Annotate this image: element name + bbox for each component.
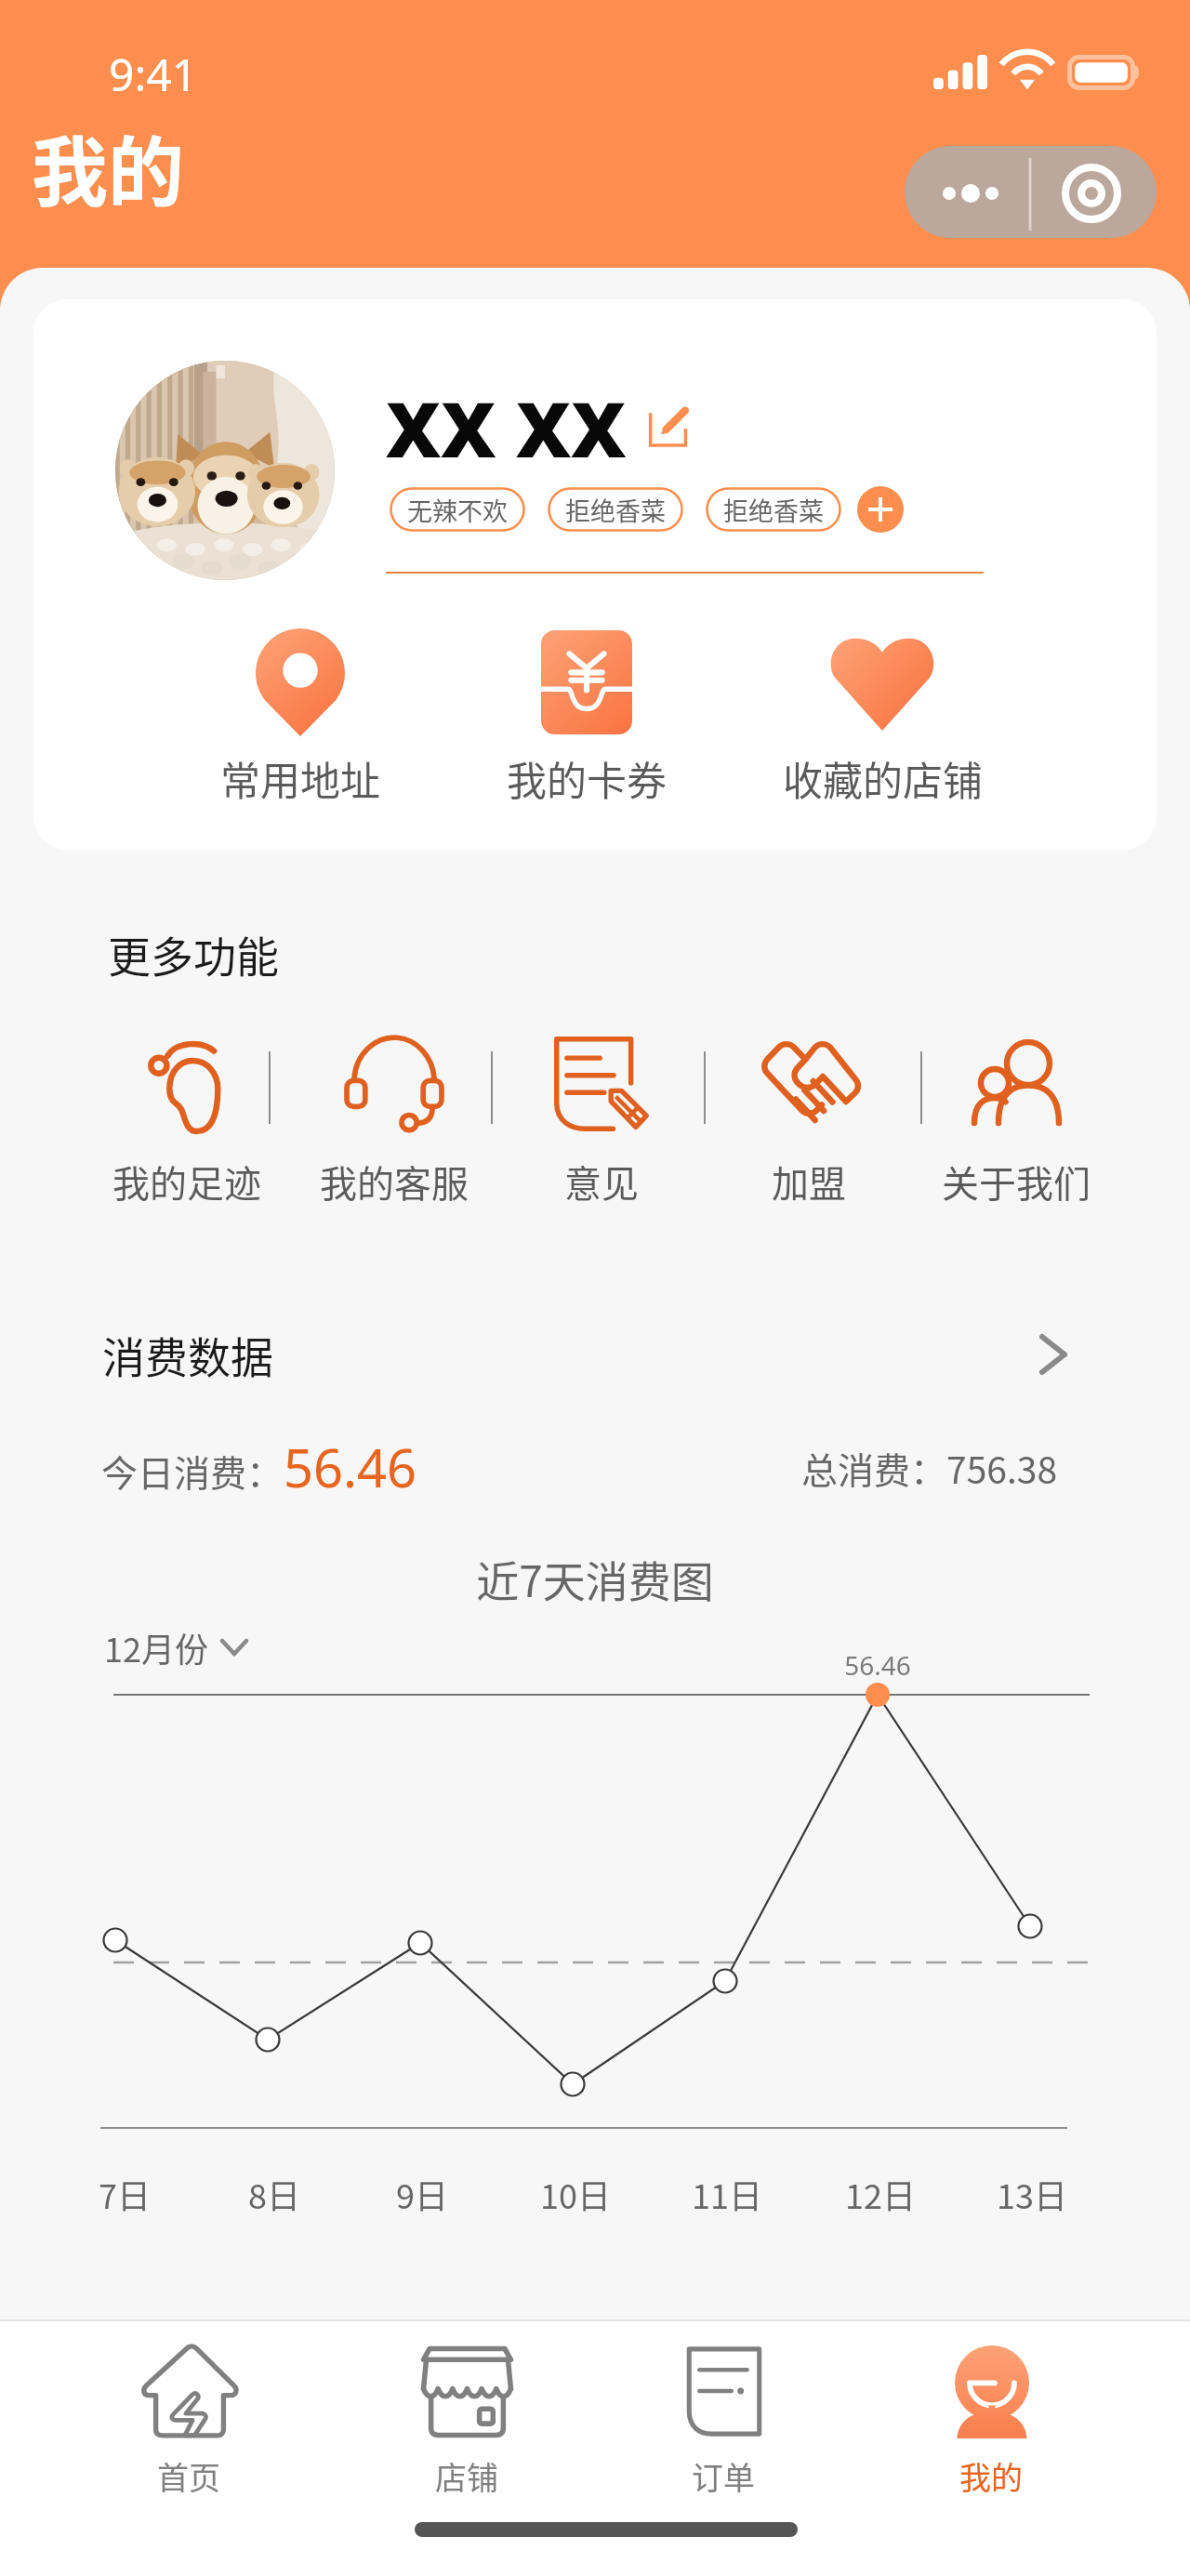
staticText: 我的 [32,112,185,222]
button[interactable]: 首页 [59,2343,319,2501]
staticText: 关于我们 [942,1155,1091,1209]
staticText: 8日 [218,2170,330,2218]
button[interactable]: 常用地址 [142,627,458,803]
button[interactable]: 我的卡券 [429,627,745,803]
staticText: 订单 [692,2453,755,2499]
button[interactable]: 我的客服 [292,1036,496,1222]
staticText: 我的客服 [320,1155,469,1209]
button[interactable]: 订单 [593,2343,853,2501]
button[interactable]: Mini program menu [905,146,1157,238]
button[interactable]: 无辣不欢 [390,487,525,532]
staticText: 56.46 [284,1432,417,1502]
button[interactable]: Edit name [642,403,693,453]
button[interactable]: 意见 [499,1036,704,1222]
button[interactable]: 店铺 [337,2343,597,2501]
button[interactable]: 关于我们 [914,1036,1118,1222]
staticText: 13日 [976,2170,1088,2218]
staticText: 我的卡券 [507,749,667,803]
staticText: 今日消费： [101,1445,284,1497]
staticText: 常用地址 [220,749,380,803]
button[interactable]: Profile photo [115,361,335,580]
staticText: 我的 [959,2453,1023,2499]
staticText: 收藏的店铺 [783,749,983,803]
staticText: 9日 [366,2170,478,2218]
staticText: XX XX [386,376,627,480]
button[interactable]: 12月份 [104,1623,249,1671]
staticText: 12日 [825,2170,936,2218]
button[interactable]: 我的 [861,2343,1121,2501]
staticText: 无辣不欢 [407,492,508,528]
button[interactable]: 我的足迹 [85,1036,289,1222]
staticText: 更多功能 [108,923,279,985]
button[interactable]: Add tag [857,486,904,533]
button[interactable]: 加盟 [707,1036,911,1222]
staticText: 消费数据 [102,1324,273,1386]
staticText: 店铺 [435,2453,498,2499]
staticText: 意见 [564,1155,639,1209]
button[interactable]: 拒绝香菜 [548,487,683,532]
staticText: 我的足迹 [112,1155,261,1209]
staticText: 拒绝香菜 [565,492,666,528]
staticText: 加盟 [772,1155,846,1209]
staticText: 56.46 [836,1647,919,1683]
button[interactable]: 拒绝香菜 [706,487,841,532]
staticText: 7日 [69,2170,180,2218]
button[interactable]: 消费数据 [93,1320,1067,1389]
staticText: 11日 [671,2170,783,2218]
staticText: 12月份 [104,1623,208,1671]
staticText: 近7天消费图 [0,1548,1190,1610]
staticText: 首页 [157,2453,220,2499]
staticText: 9:41 [109,44,198,104]
staticText: 总消费：756.38 [801,1442,1058,1494]
button[interactable]: 收藏的店铺 [724,627,1040,803]
staticText: 10日 [520,2170,631,2218]
staticText: 拒绝香菜 [723,492,824,528]
